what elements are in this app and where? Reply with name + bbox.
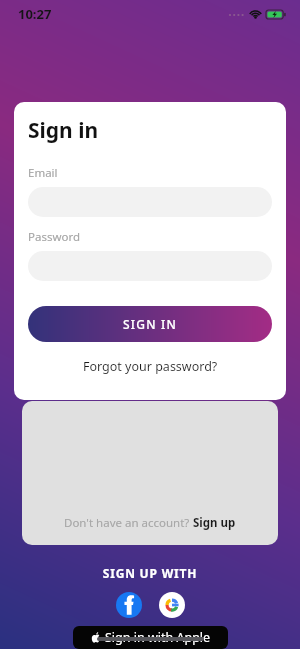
button[interactable]: Sign up with Facebook bbox=[116, 592, 142, 618]
staticText: SIGN IN bbox=[123, 316, 177, 332]
button[interactable]: Sign up with Google bbox=[159, 592, 185, 618]
staticText: Email bbox=[28, 165, 58, 181]
button[interactable]: SIGN IN bbox=[28, 306, 272, 342]
staticText: Forgot your password? bbox=[83, 358, 218, 375]
button[interactable]: Don't have an account? bbox=[22, 401, 278, 545]
staticText: SIGN UP WITH bbox=[0, 565, 300, 581]
staticText: Sign in with Apple bbox=[105, 629, 211, 646]
button[interactable]: Sign in with Apple bbox=[73, 626, 228, 649]
staticText: Sign in bbox=[28, 116, 99, 145]
staticText: 10:27 bbox=[18, 5, 52, 23]
staticText: Sign up bbox=[193, 515, 236, 531]
staticText: Password bbox=[28, 229, 81, 245]
staticText: Don't have an account? bbox=[64, 515, 193, 531]
button[interactable]: Forgot your password? bbox=[28, 358, 272, 375]
